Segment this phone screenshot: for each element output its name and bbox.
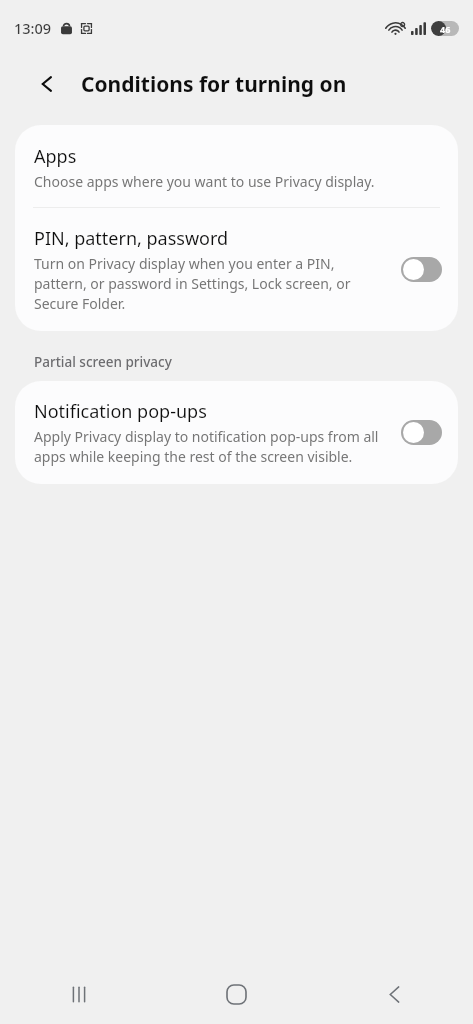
button[interactable]: Back: [315, 964, 473, 1024]
staticText: 13:09: [14, 18, 52, 38]
staticText: Choose apps where you want to use Privac…: [34, 172, 375, 191]
button[interactable]: Toggle: [401, 257, 442, 282]
button[interactable]: Apps: [15, 125, 458, 207]
staticText: Apps: [34, 144, 77, 169]
button[interactable]: PIN, pattern, password: [15, 208, 458, 331]
staticText: Turn on Privacy display when you enter a…: [34, 254, 387, 313]
button[interactable]: Back: [30, 67, 64, 101]
button[interactable]: Notification pop-ups: [15, 381, 458, 484]
staticText: 46: [440, 23, 451, 35]
staticText: PIN, pattern, password: [34, 226, 229, 251]
button[interactable]: Home: [157, 964, 315, 1024]
staticText: Apply Privacy display to notification po…: [34, 427, 387, 466]
staticText: Conditions for turning on: [81, 70, 347, 99]
staticText: Notification pop-ups: [34, 399, 207, 424]
staticText: Partial screen privacy: [34, 353, 172, 371]
button[interactable]: Recents: [0, 964, 157, 1024]
button[interactable]: Toggle: [401, 420, 442, 445]
